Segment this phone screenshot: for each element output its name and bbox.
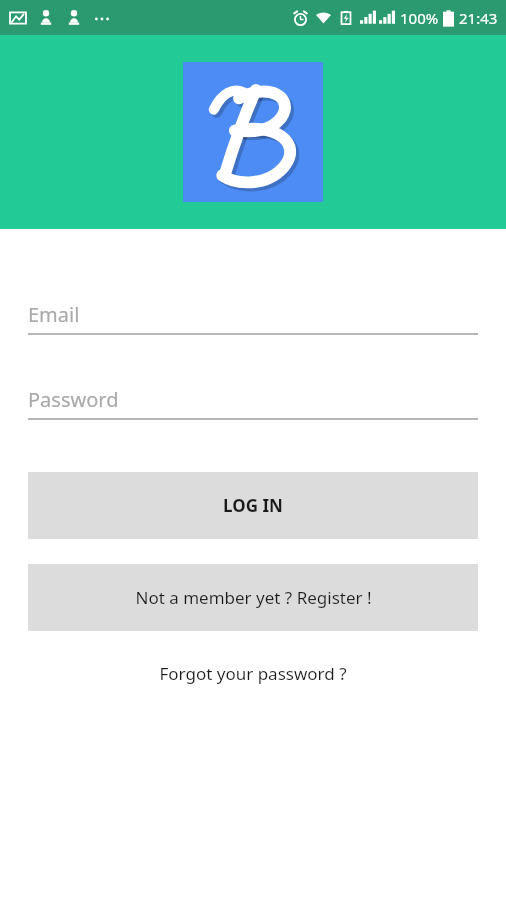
- button[interactable]: Forgot your password ?: [0, 653, 506, 693]
- staticText: LOG IN: [223, 494, 283, 517]
- staticText: Password: [28, 386, 119, 413]
- button[interactable]: Password: [28, 380, 478, 420]
- staticText: Email: [28, 301, 80, 328]
- button[interactable]: Not a member yet ? Register !: [28, 564, 478, 631]
- button[interactable]: Email: [28, 295, 478, 335]
- button[interactable]: LOG IN: [28, 472, 478, 539]
- staticText: 21:43: [459, 8, 498, 28]
- staticText: Not a member yet ? Register !: [135, 586, 372, 609]
- staticText: 100%: [400, 8, 439, 28]
- staticText: Forgot your password ?: [159, 662, 347, 685]
